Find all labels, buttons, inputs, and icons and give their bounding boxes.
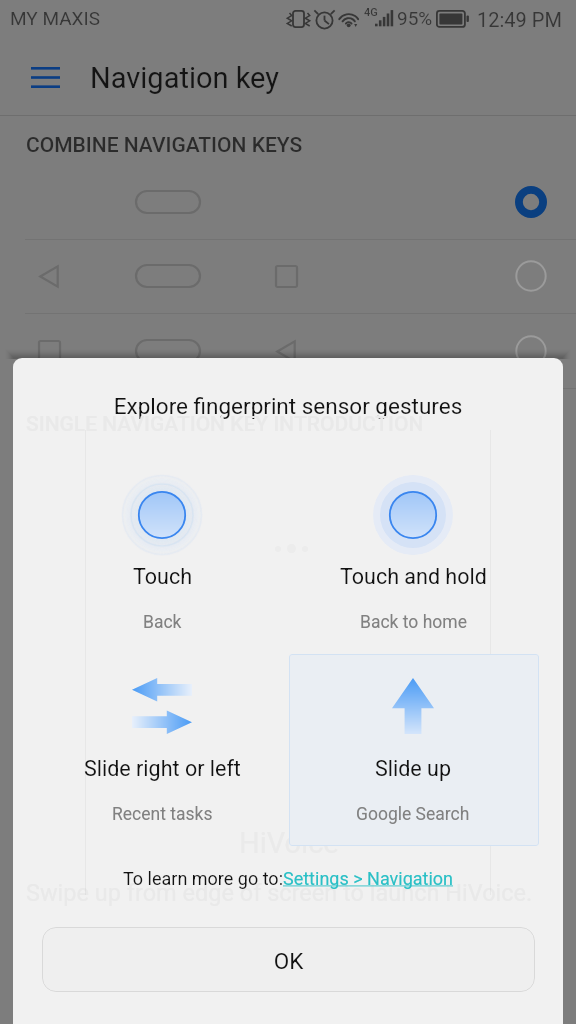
staticText: Settings > Navigation <box>283 868 454 889</box>
staticText: Back to home <box>360 612 467 633</box>
button[interactable] <box>37 455 287 645</box>
staticText: SINGLE NAVIGATION KEY INTRODUCTION <box>26 412 424 437</box>
staticText: Swipe up from edge of screen to launch H… <box>26 879 533 907</box>
staticText: Swipe up from edge of screen to launch H… <box>26 878 522 905</box>
staticText: HiVoice <box>239 826 339 860</box>
button[interactable]: OK <box>42 927 535 992</box>
staticText: 12:49 PM <box>477 8 562 31</box>
button[interactable]: Settings > Navigation <box>283 868 454 889</box>
staticText: Explore fingerprint sensor gestures <box>13 393 563 419</box>
staticText: To learn more go to: <box>123 868 283 889</box>
staticText: OK <box>42 948 535 974</box>
staticText: Slide right or left <box>84 756 241 781</box>
staticText: 4G <box>364 6 378 19</box>
staticText: COMBINE NAVIGATION KEYS <box>26 133 303 158</box>
button[interactable] <box>0 314 576 389</box>
staticText: Touch <box>133 564 192 589</box>
button[interactable] <box>0 239 576 314</box>
staticText: MY MAXIS <box>10 7 100 29</box>
button[interactable] <box>288 646 538 836</box>
staticText: Google Search <box>356 804 470 825</box>
staticText: Slide up <box>375 756 452 781</box>
staticText: SINGLE NAVIGATION KEY INTRODUCTION <box>26 409 424 434</box>
staticText: 95% <box>397 7 433 29</box>
button[interactable] <box>288 455 538 645</box>
staticText: Touch and hold <box>340 564 487 589</box>
button[interactable] <box>37 646 287 836</box>
staticText: Navigation key <box>90 61 280 95</box>
button[interactable]: Open navigation menu <box>18 54 72 100</box>
staticText: Back <box>143 612 182 633</box>
button[interactable] <box>0 165 576 240</box>
staticText: Recent tasks <box>112 804 213 825</box>
